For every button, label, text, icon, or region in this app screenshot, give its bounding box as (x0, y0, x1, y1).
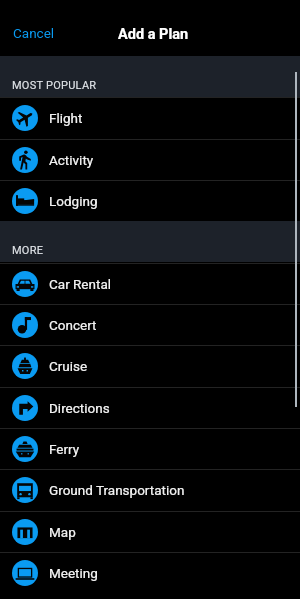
button[interactable]: Ferry (0, 428, 300, 469)
staticText: Meeting (49, 565, 98, 581)
staticText: MORE (12, 244, 44, 257)
staticText: Lodging (49, 193, 98, 209)
button[interactable]: Lodging (0, 180, 300, 221)
button[interactable]: Flight (0, 97, 300, 138)
button[interactable]: Meeting (0, 552, 300, 593)
button[interactable]: Concert (0, 304, 300, 345)
staticText: Car Rental (49, 276, 112, 292)
staticText: Ground Transportation (49, 482, 185, 498)
button[interactable]: Activity (0, 139, 300, 180)
staticText: Cancel (13, 25, 55, 41)
staticText: Map (49, 524, 76, 540)
staticText: Cruise (49, 358, 88, 374)
button[interactable]: Car Rental (0, 263, 300, 304)
staticText: Concert (49, 317, 97, 333)
staticText: Flight (49, 110, 83, 126)
staticText: Activity (49, 152, 94, 168)
staticText: Add a Plan (118, 26, 189, 43)
button[interactable]: Directions (0, 387, 300, 428)
button[interactable]: Cancel (0, 16, 68, 50)
staticText: Ferry (49, 441, 80, 457)
button[interactable]: Map (0, 511, 300, 552)
button[interactable]: Cruise (0, 345, 300, 386)
staticText: MOST POPULAR (12, 79, 97, 92)
button[interactable]: Ground Transportation (0, 469, 300, 510)
staticText: Directions (49, 400, 110, 416)
